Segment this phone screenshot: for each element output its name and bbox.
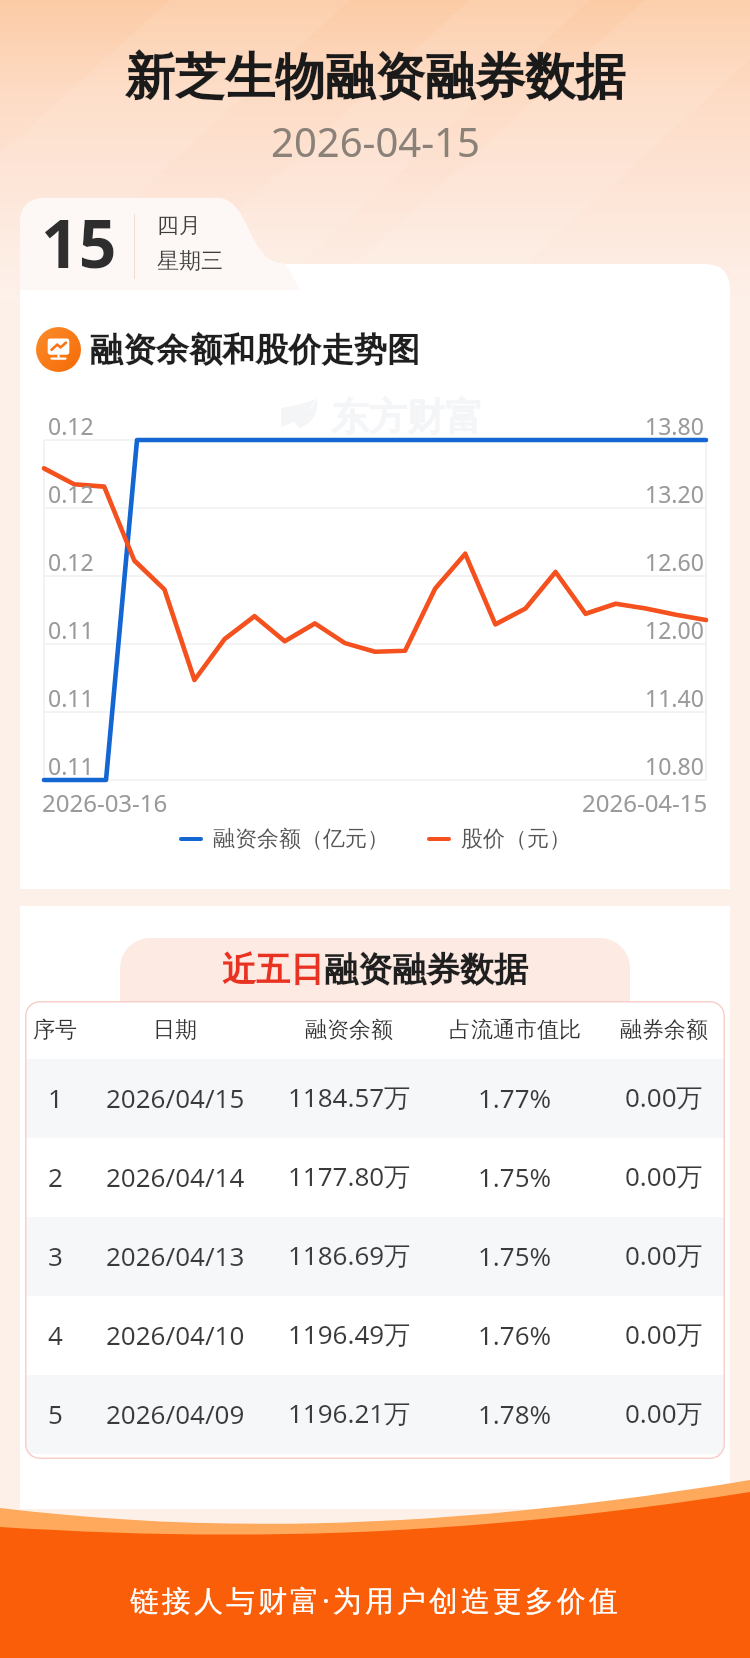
staticText: 12.00 <box>645 614 704 645</box>
staticText: 2026/04/09 <box>106 1396 245 1431</box>
staticText: 1.77% <box>478 1080 552 1115</box>
staticText: 1177.80万 <box>288 1158 411 1194</box>
staticText: 11.40 <box>645 682 704 713</box>
staticText: 融券余额 <box>620 1016 708 1044</box>
staticText: 东方财富 <box>331 1222 483 1270</box>
staticText: 0.11 <box>48 614 94 645</box>
staticText: 融资余额（亿元） <box>213 825 389 853</box>
other: 走势图 <box>36 327 81 372</box>
staticText: 2 <box>48 1159 63 1194</box>
staticText: 2026/04/15 <box>106 1080 245 1115</box>
staticText: 1184.57万 <box>288 1079 411 1115</box>
staticText: 近五日融资融券数据 <box>222 948 528 991</box>
staticText: 0.12 <box>48 410 94 441</box>
staticText: 1196.49万 <box>288 1316 411 1352</box>
staticText: 股价（元） <box>461 825 571 853</box>
staticText: 1.75% <box>478 1238 552 1273</box>
staticText: 占流通市值比 <box>449 1016 581 1044</box>
staticText: 2026-04-15 <box>271 114 480 168</box>
staticText: 1196.21万 <box>288 1395 411 1431</box>
staticText: 5 <box>48 1396 63 1431</box>
staticText: 3 <box>48 1238 63 1273</box>
staticText: 日期 <box>153 1016 197 1044</box>
staticText: 10.80 <box>645 750 704 781</box>
staticText: 1.75% <box>478 1159 552 1194</box>
staticText: 四月 <box>157 212 201 240</box>
staticText: 融资余额 <box>305 1016 393 1044</box>
staticText: 12.60 <box>645 546 704 577</box>
staticText: 0.12 <box>48 478 94 509</box>
staticText: 0.11 <box>48 750 94 781</box>
staticText: 序号 <box>33 1016 77 1044</box>
staticText: 2026/04/13 <box>106 1238 245 1273</box>
staticText: 15 <box>41 197 117 287</box>
staticText: 0.11 <box>48 682 94 713</box>
staticText: 13.80 <box>645 410 704 441</box>
staticText: 13.20 <box>645 478 704 509</box>
staticText: 链接人与财富·为用户创造更多价值 <box>130 1580 621 1620</box>
staticText: 东方财富 <box>331 393 483 441</box>
staticText: 0.00万 <box>625 1158 703 1194</box>
staticText: 4 <box>48 1317 63 1352</box>
staticText: 1.78% <box>478 1396 552 1431</box>
staticText: 2026/04/14 <box>106 1159 245 1194</box>
staticText: 1186.69万 <box>288 1237 411 1273</box>
staticText: 星期三 <box>157 247 223 275</box>
staticText: 1 <box>48 1080 63 1115</box>
staticText: 新芝生物融资融券数据 <box>125 46 625 109</box>
staticText: 0.00万 <box>625 1316 703 1352</box>
staticText: 2026-03-16 <box>42 786 168 819</box>
staticText: 0.12 <box>48 546 94 577</box>
staticText: 2026-04-15 <box>582 786 708 819</box>
staticText: 0.00万 <box>625 1395 703 1431</box>
staticText: 融资余额和股价走势图 <box>90 329 420 371</box>
staticText: 2026/04/10 <box>106 1317 245 1352</box>
staticText: 1.76% <box>478 1317 552 1352</box>
staticText: 0.00万 <box>625 1237 703 1273</box>
staticText: 0.00万 <box>625 1079 703 1115</box>
